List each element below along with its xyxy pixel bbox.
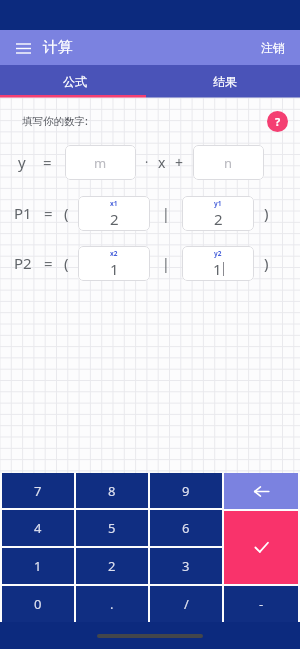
staticText: ( xyxy=(64,203,69,223)
button[interactable]: y2 xyxy=(182,246,254,281)
staticText: n xyxy=(224,154,233,172)
staticText: 1 xyxy=(34,557,42,575)
button[interactable]: Confirm xyxy=(224,511,298,584)
button[interactable]: 2 xyxy=(76,548,148,584)
button[interactable]: m xyxy=(65,145,136,180)
button[interactable]: 9 xyxy=(150,473,222,508)
button[interactable]: Backspace xyxy=(224,473,298,509)
staticText: · xyxy=(145,154,149,170)
staticText: = xyxy=(44,203,53,223)
staticText: 5 xyxy=(108,519,116,537)
button[interactable]: y1 xyxy=(182,196,254,231)
button[interactable]: 3 xyxy=(150,548,222,584)
staticText: m xyxy=(94,154,107,172)
staticText: 填写你的数字: xyxy=(22,114,88,128)
staticText: ) xyxy=(264,253,269,273)
button[interactable]: . xyxy=(76,586,148,622)
staticText: - xyxy=(259,595,264,613)
staticText: 9 xyxy=(182,482,190,500)
staticText: P2 xyxy=(14,253,32,273)
button[interactable]: / xyxy=(150,586,222,622)
staticText: = xyxy=(44,253,53,273)
staticText: 公式 xyxy=(63,74,87,89)
button[interactable]: 6 xyxy=(150,510,222,546)
button[interactable]: - xyxy=(224,586,298,622)
staticText: 1 xyxy=(213,259,222,279)
staticText: x xyxy=(158,153,166,172)
staticText: 3 xyxy=(182,557,190,575)
staticText: / xyxy=(184,595,189,613)
button[interactable]: 结果 xyxy=(150,65,300,98)
button[interactable]: 7 xyxy=(2,473,74,508)
staticText: ? xyxy=(275,114,281,129)
button[interactable]: n xyxy=(193,145,264,180)
staticText: 6 xyxy=(182,519,190,537)
button[interactable]: 注销 xyxy=(258,34,288,61)
button[interactable]: 公式 xyxy=(0,65,150,98)
staticText: | xyxy=(162,254,170,273)
staticText: 结果 xyxy=(213,74,237,89)
staticText: 8 xyxy=(108,482,116,500)
staticText: ) xyxy=(264,203,269,223)
staticText: 计算 xyxy=(43,38,73,57)
button[interactable]: 8 xyxy=(76,473,148,508)
staticText: 1 xyxy=(110,259,119,279)
staticText: . xyxy=(110,595,114,613)
staticText: 2 xyxy=(214,209,223,229)
staticText: ( xyxy=(64,253,69,273)
button[interactable]: x1 xyxy=(78,196,150,231)
button[interactable]: Menu xyxy=(12,37,34,59)
button[interactable]: 5 xyxy=(76,510,148,546)
staticText: 注销 xyxy=(261,40,285,55)
staticText: | xyxy=(162,204,170,223)
button[interactable]: 1 xyxy=(2,548,74,584)
staticText: x2 xyxy=(110,249,118,258)
staticText: = xyxy=(43,152,52,172)
staticText: + xyxy=(175,153,184,172)
staticText: y1 xyxy=(214,199,222,208)
button[interactable]: 0 xyxy=(2,586,74,622)
staticText: 2 xyxy=(110,209,119,229)
staticText: y xyxy=(18,152,26,172)
staticText: 7 xyxy=(34,482,42,500)
button[interactable]: 4 xyxy=(2,510,74,546)
staticText: P1 xyxy=(14,203,32,223)
button[interactable]: x2 xyxy=(78,246,150,281)
staticText: x1 xyxy=(110,199,118,208)
staticText: 4 xyxy=(34,519,42,537)
staticText: 2 xyxy=(108,557,116,575)
staticText: y2 xyxy=(214,249,222,258)
button[interactable]: Help xyxy=(267,111,288,132)
staticText: 0 xyxy=(34,595,42,613)
